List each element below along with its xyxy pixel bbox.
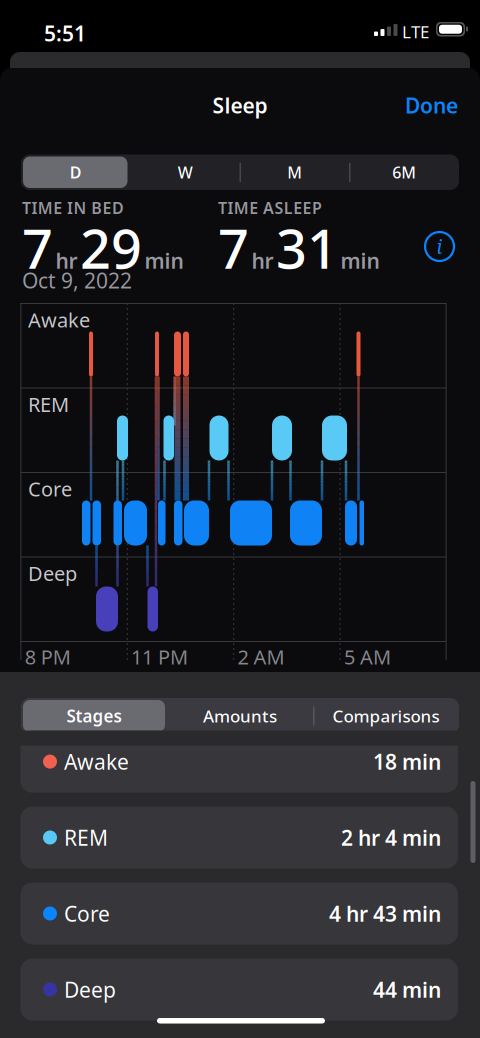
staticText: i bbox=[436, 233, 442, 260]
staticText: Oct 9, 2022 bbox=[22, 266, 132, 295]
staticText: 5:51 bbox=[44, 19, 86, 48]
staticText: Stages bbox=[66, 704, 121, 728]
staticText: Comparisons bbox=[332, 704, 439, 728]
staticText: Deep bbox=[64, 975, 116, 1004]
staticText: min bbox=[144, 246, 183, 275]
button[interactable]: 6M bbox=[349, 154, 459, 190]
staticText: hr bbox=[251, 246, 273, 275]
staticText: 8 PM bbox=[25, 643, 71, 670]
staticText: TIME ASLEEP bbox=[218, 197, 322, 219]
staticText: 5 AM bbox=[344, 643, 391, 670]
button[interactable]: i bbox=[425, 232, 454, 261]
button[interactable]: W bbox=[130, 154, 240, 190]
staticText: LTE bbox=[402, 20, 429, 43]
button[interactable]: Core bbox=[20, 882, 458, 944]
staticText: 31 bbox=[276, 211, 338, 284]
staticText: W bbox=[178, 161, 193, 183]
button[interactable]: Deep bbox=[20, 958, 458, 1020]
staticText: 2 AM bbox=[237, 643, 284, 670]
staticText: 44 min bbox=[373, 975, 441, 1004]
staticText: 7 bbox=[22, 211, 53, 284]
staticText: Core bbox=[64, 899, 110, 928]
staticText: Amounts bbox=[203, 704, 277, 728]
staticText: 7 bbox=[218, 211, 249, 284]
staticText: hr bbox=[55, 246, 77, 275]
staticText: Done bbox=[405, 91, 458, 120]
staticText: M bbox=[287, 161, 302, 183]
staticText: Core bbox=[28, 475, 72, 502]
button[interactable]: Amounts bbox=[167, 698, 313, 734]
button[interactable]: REM bbox=[20, 806, 458, 868]
staticText: min bbox=[340, 246, 379, 275]
staticText: 4 hr 43 min bbox=[329, 899, 441, 928]
staticText: 18 min bbox=[373, 747, 441, 776]
staticText: 2 hr 4 min bbox=[341, 823, 441, 852]
staticText: Awake bbox=[64, 747, 129, 776]
button[interactable]: Done bbox=[405, 91, 458, 120]
staticText: REM bbox=[64, 823, 108, 852]
button[interactable]: Stages bbox=[21, 698, 167, 734]
staticText: Deep bbox=[28, 559, 77, 587]
staticText: D bbox=[70, 161, 82, 183]
staticText: REM bbox=[28, 390, 69, 418]
staticText: Awake bbox=[28, 306, 90, 333]
staticText: TIME IN BED bbox=[22, 197, 124, 219]
button[interactable]: D bbox=[21, 154, 130, 190]
staticText: 6M bbox=[392, 161, 416, 183]
staticText: 11 PM bbox=[131, 643, 188, 670]
button[interactable]: Comparisons bbox=[313, 698, 459, 734]
button[interactable]: M bbox=[240, 154, 349, 190]
staticText: Sleep bbox=[212, 91, 267, 120]
button[interactable]: Awake bbox=[20, 731, 458, 793]
staticText: 29 bbox=[80, 211, 142, 284]
